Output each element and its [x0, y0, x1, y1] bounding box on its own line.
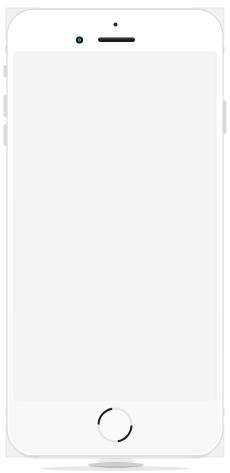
- button[interactable]: White smartphone device mockup with blan…: [0, 0, 230, 473]
